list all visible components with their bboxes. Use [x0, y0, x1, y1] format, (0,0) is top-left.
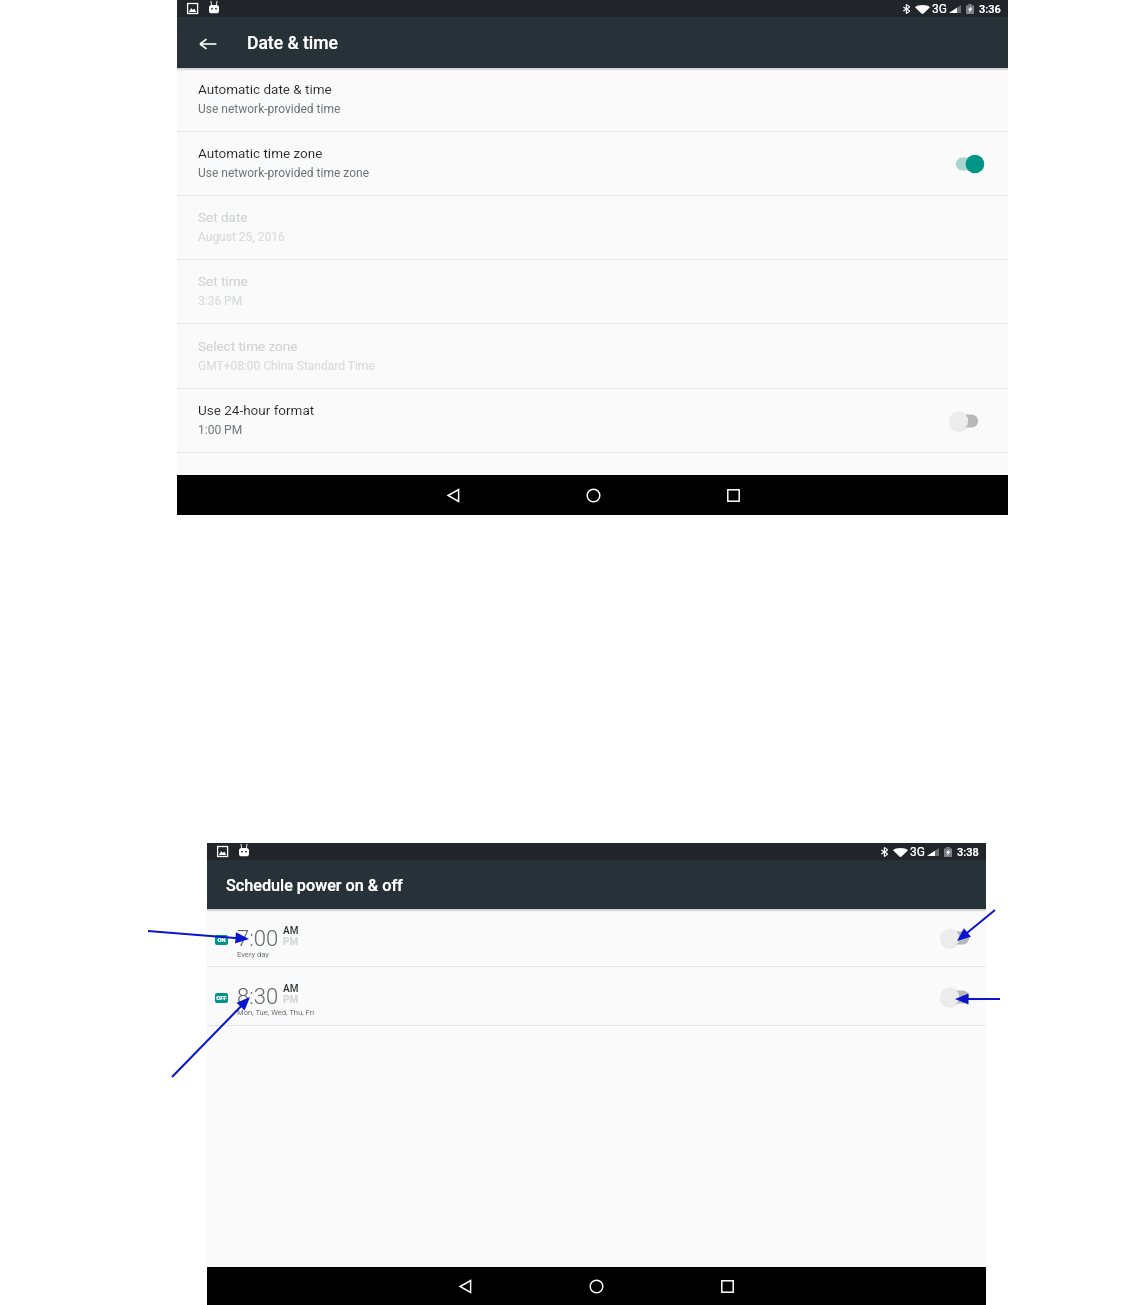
staticText: Set time — [198, 273, 248, 289]
staticText: Use 24-hour format — [198, 402, 315, 418]
button[interactable]: Recent apps — [662, 1267, 793, 1305]
button[interactable]: Use 24-hour format — [944, 404, 984, 438]
staticText: Select time zone — [198, 338, 298, 354]
button[interactable]: ON — [207, 909, 986, 967]
staticText: Date & time — [247, 33, 338, 54]
staticText: 3:36 — [979, 3, 1001, 16]
button[interactable]: Set date — [177, 196, 1008, 260]
staticText: Set date — [198, 209, 248, 225]
staticText: GMT+08:00 China Standard Time — [198, 359, 375, 373]
button[interactable]: Home — [531, 1267, 662, 1305]
staticText: August 25, 2016 — [198, 230, 285, 244]
staticText: Automatic time zone — [198, 145, 323, 161]
button[interactable]: Automatic time zone — [177, 132, 1008, 196]
staticText: 3G — [910, 845, 925, 859]
button[interactable]: Home — [523, 475, 663, 515]
staticText: 8:30 — [237, 984, 279, 1010]
staticText: PM — [283, 994, 299, 1006]
staticText: 3:36 PM — [198, 294, 243, 308]
button[interactable]: OFF — [207, 967, 986, 1026]
staticText: 3G — [932, 2, 947, 16]
staticText: PM — [283, 936, 299, 948]
staticText: 7:00 — [237, 926, 279, 952]
button[interactable]: Enable 7:00 alarm — [935, 921, 975, 955]
staticText: Schedule power on & off — [226, 876, 403, 895]
button[interactable]: Back — [400, 1267, 531, 1305]
staticText: 3:38 — [957, 846, 979, 859]
staticText: OFF — [216, 995, 227, 1002]
button[interactable]: Enable 8:30 alarm — [935, 980, 975, 1014]
button[interactable]: Use 24-hour format — [177, 389, 1008, 453]
staticText: Use network-provided time — [198, 102, 341, 116]
staticText: AM — [283, 925, 299, 937]
button[interactable]: Back — [383, 475, 523, 515]
staticText: 1:00 PM — [198, 423, 243, 437]
button[interactable]: Automatic time zone — [950, 147, 990, 181]
staticText: ON — [217, 937, 226, 944]
staticText: Automatic date & time — [198, 81, 332, 97]
staticText: AM — [283, 983, 299, 995]
button[interactable]: Recent apps — [663, 475, 803, 515]
button[interactable]: Select time zone — [177, 324, 1008, 389]
staticText: Every day — [237, 950, 269, 959]
button[interactable]: Automatic date & time — [177, 68, 1008, 132]
staticText: Use network-provided time zone — [198, 166, 370, 180]
staticText: Mon, Tue, Wed, Thu, Fri — [237, 1008, 315, 1017]
button[interactable]: Navigate up — [196, 32, 220, 56]
button[interactable]: Set time — [177, 260, 1008, 324]
